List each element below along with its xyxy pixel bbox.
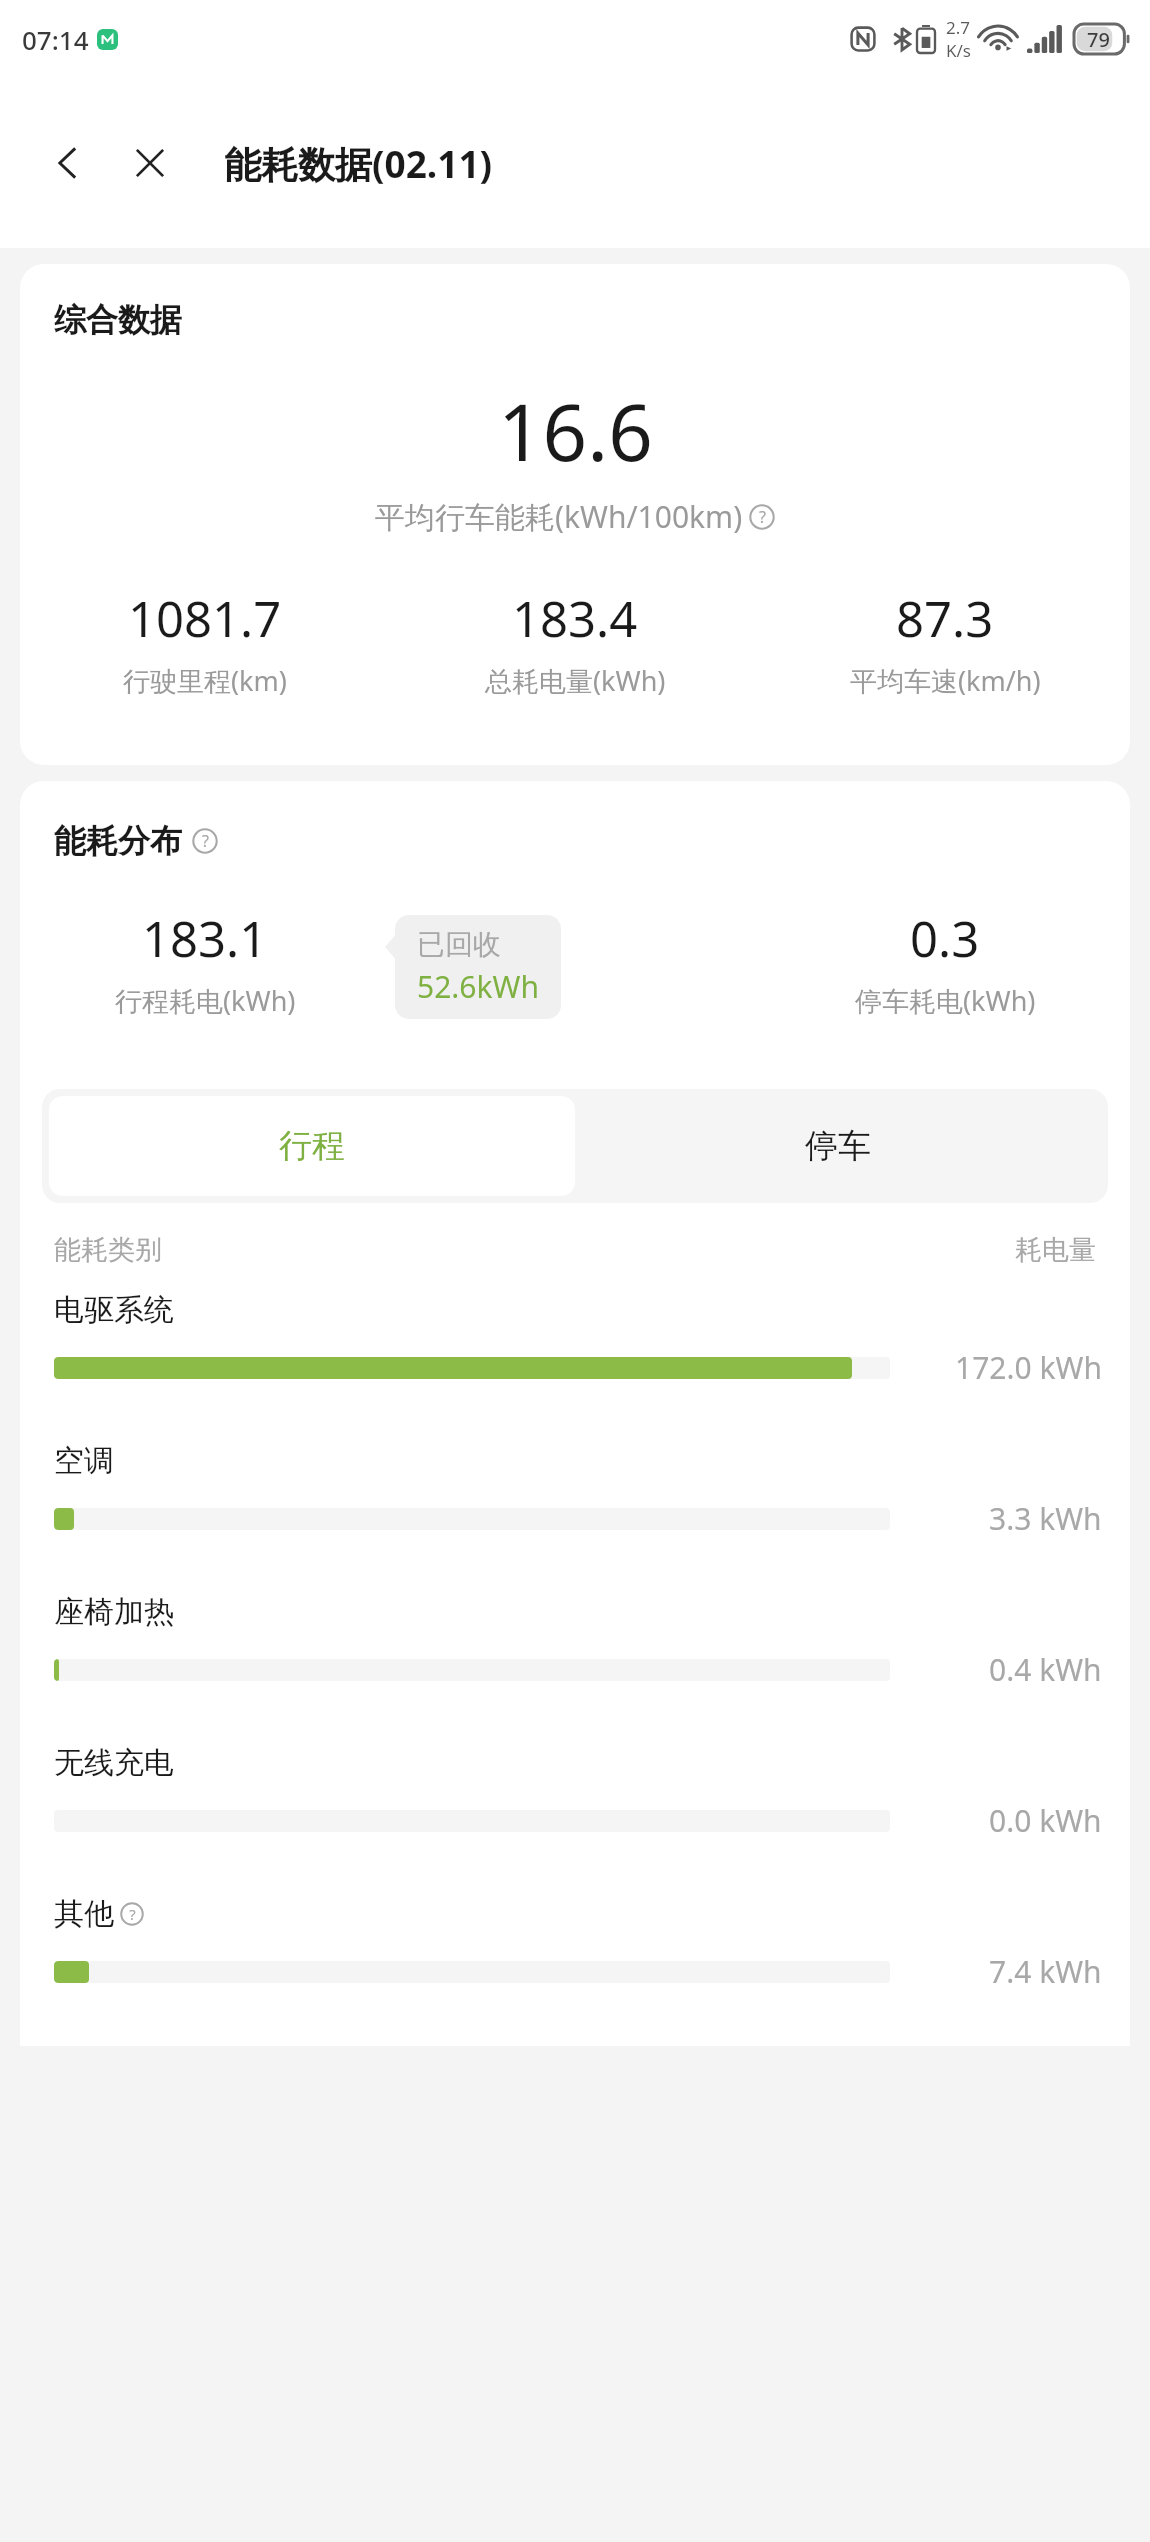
staticText: 52.6kWh <box>417 966 539 1007</box>
button[interactable]: 座椅加热 <box>20 1593 1130 1744</box>
staticText: 3.3 kWh <box>989 1498 1102 1539</box>
staticText: 座椅加热 <box>54 1593 174 1631</box>
staticText: 79 <box>1087 26 1110 53</box>
staticText: 87.3 <box>896 585 994 652</box>
staticText: 耗电量 <box>1015 1233 1096 1267</box>
staticText: K/s <box>946 39 971 62</box>
staticText: 综合数据 <box>54 300 182 340</box>
staticText: 183.4 <box>512 585 638 652</box>
button[interactable]: 其他 <box>20 1895 1130 2046</box>
staticText: 0.3 <box>910 905 980 972</box>
staticText: 其他 <box>54 1895 114 1933</box>
staticText: 平均行车能耗(kWh/100km) <box>375 496 743 537</box>
staticText: 总耗电量(kWh) <box>485 662 666 699</box>
staticText: 172.0 kWh <box>955 1347 1102 1388</box>
button[interactable]: 行程 <box>49 1096 575 1196</box>
staticText: 已回收 <box>417 927 501 962</box>
staticText: 16.6 <box>498 378 653 484</box>
button[interactable]: 空调 <box>20 1442 1130 1593</box>
staticText: 行驶里程(km) <box>123 662 287 699</box>
staticText: 停车耗电(kWh) <box>855 982 1036 1019</box>
button[interactable]: 停车 <box>575 1096 1101 1196</box>
staticText: 2.7 <box>946 16 971 39</box>
button[interactable]: 电驱系统 <box>20 1291 1130 1442</box>
staticText: 0.0 kWh <box>989 1800 1102 1841</box>
staticText: 停车 <box>805 1125 871 1167</box>
staticText: 空调 <box>54 1442 114 1480</box>
staticText: 行程 <box>279 1125 345 1167</box>
button[interactable]: 无线充电 <box>20 1744 1130 1895</box>
button[interactable]: Back <box>42 137 94 189</box>
staticText: 无线充电 <box>54 1744 174 1782</box>
staticText: 能耗数据(02.11) <box>224 138 493 189</box>
staticText: 183.1 <box>142 905 268 972</box>
staticText: 行程耗电(kWh) <box>115 982 296 1019</box>
staticText: 平均车速(km/h) <box>850 662 1041 699</box>
button[interactable]: Close <box>124 137 176 189</box>
staticText: 能耗类别 <box>54 1233 162 1267</box>
staticText: 能耗分布 <box>54 821 182 861</box>
staticText: 0.4 kWh <box>989 1649 1102 1690</box>
staticText: 1081.7 <box>128 585 282 652</box>
staticText: ? <box>129 1904 136 1924</box>
staticText: 07:14 <box>22 22 89 57</box>
staticText: 电驱系统 <box>54 1291 174 1329</box>
staticText: ? <box>202 830 209 852</box>
staticText: 7.4 kWh <box>989 1951 1102 1992</box>
staticText: ? <box>759 506 766 528</box>
